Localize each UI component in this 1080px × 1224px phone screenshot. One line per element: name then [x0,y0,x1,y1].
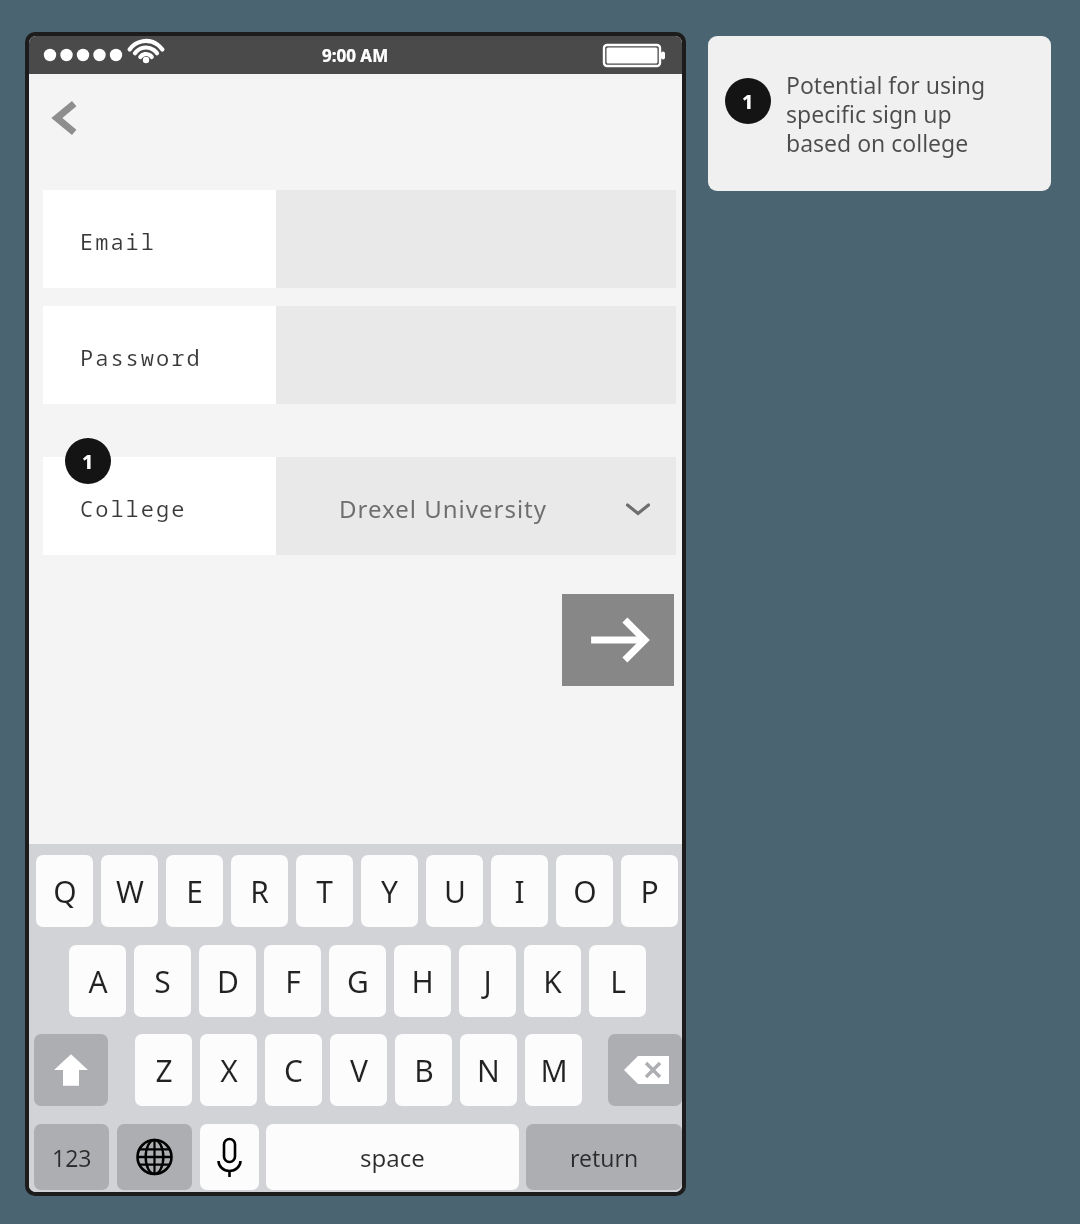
button[interactable]: Q [36,855,93,927]
button[interactable]: College [43,457,676,555]
button[interactable]: F [264,945,321,1017]
button[interactable]: M [525,1034,582,1106]
button[interactable]: return [526,1124,682,1190]
staticText: L [610,961,626,1002]
button[interactable]: X [200,1034,257,1106]
staticText: W [116,871,144,912]
staticText: B [414,1050,434,1091]
button[interactable]: L [589,945,646,1017]
button[interactable]: space [266,1124,519,1190]
button[interactable]: A [69,945,126,1017]
button[interactable]: K [524,945,581,1017]
button[interactable]: E [166,855,223,927]
staticText: F [285,961,301,1002]
button[interactable]: Voice input [200,1124,259,1190]
button[interactable]: W [101,855,158,927]
staticText: Z [155,1050,173,1091]
staticText: H [411,961,434,1002]
staticText: D [217,961,239,1002]
staticText: J [483,961,492,1002]
staticText: Q [53,871,77,912]
button[interactable]: N [460,1034,517,1106]
staticText: 123 [52,1142,92,1173]
staticText: Potential for using specific sign up bas… [786,69,986,159]
staticText: R [250,871,269,912]
staticText: E [186,871,203,912]
staticText: G [347,961,369,1002]
staticText: M [540,1050,568,1091]
button[interactable]: 123 [34,1124,109,1190]
staticText: U [444,871,466,912]
button[interactable]: J [459,945,516,1017]
button[interactable]: Next [562,594,674,686]
button[interactable]: C [265,1034,322,1106]
button[interactable]: I [491,855,548,927]
staticText: 1 [742,88,754,115]
staticText: N [477,1050,500,1091]
button[interactable]: Y [361,855,418,927]
staticText: space [360,1141,425,1174]
staticText: X [220,1050,238,1091]
staticText: V [350,1050,368,1091]
staticText: College [80,493,187,523]
button[interactable]: Change keyboard language [117,1124,192,1190]
staticText: C [284,1050,303,1091]
staticText: S [154,961,171,1002]
button[interactable]: B [395,1034,452,1106]
staticText: A [88,961,108,1002]
staticText: O [573,871,597,912]
button[interactable]: V [330,1034,387,1106]
button[interactable]: G [329,945,386,1017]
button[interactable]: Backspace [608,1034,682,1106]
button[interactable]: O [556,855,613,927]
button[interactable]: U [426,855,483,927]
staticText: Y [381,871,398,912]
button[interactable]: P [621,855,678,927]
staticText: Drexel University [339,492,547,525]
staticText: I [514,871,525,912]
staticText: 9:00 AM [322,44,389,67]
staticText: T [316,871,333,912]
staticText: return [570,1142,639,1173]
button[interactable]: Shift [34,1034,108,1106]
button[interactable]: H [394,945,451,1017]
staticText: K [543,961,562,1002]
button[interactable]: Back [37,88,97,148]
button[interactable]: Email [43,190,676,288]
button[interactable]: S [134,945,191,1017]
staticText: P [640,871,659,912]
button[interactable]: Z [135,1034,192,1106]
button[interactable]: T [296,855,353,927]
button[interactable]: R [231,855,288,927]
staticText: Password [80,342,202,372]
button[interactable]: D [199,945,256,1017]
staticText: 1 [82,448,94,475]
staticText: Email [80,226,157,256]
button[interactable]: Password [43,306,676,404]
